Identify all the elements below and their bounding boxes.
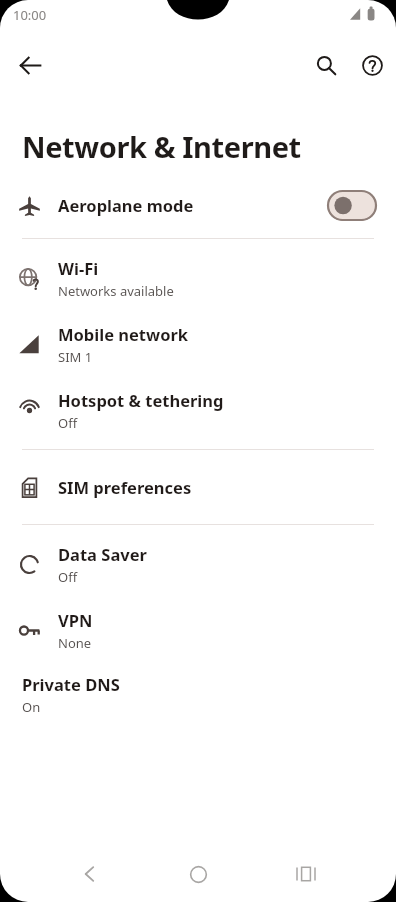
button[interactable]: VPN (0, 597, 396, 663)
button[interactable]: Wi-Fi (0, 245, 396, 311)
staticText: VPN (58, 609, 93, 631)
staticText: Mobile network (58, 323, 189, 345)
staticText: SIM preferences (58, 476, 192, 498)
staticText: None (58, 634, 92, 652)
button[interactable]: Aeroplane mode (0, 172, 396, 238)
button[interactable]: Help (348, 41, 396, 89)
staticText: 10:00 (13, 6, 47, 24)
staticText: Networks available (58, 282, 174, 300)
button[interactable]: Data Saver (0, 531, 396, 597)
staticText: SIM 1 (58, 348, 93, 366)
staticText: Data Saver (58, 543, 147, 565)
button[interactable]: SIM preferences (0, 456, 396, 518)
button[interactable]: Hotspot & tethering (0, 377, 396, 443)
button[interactable]: Mobile network (0, 311, 396, 377)
button[interactable]: Back (6, 41, 54, 89)
button[interactable]: Private DNS (0, 663, 396, 725)
button[interactable]: Recent apps (278, 846, 334, 902)
button[interactable]: Back (62, 846, 118, 902)
button[interactable]: Home (170, 846, 226, 902)
staticText: Private DNS (22, 673, 120, 695)
staticText: Network & Internet (22, 127, 301, 166)
button[interactable]: Search (302, 41, 350, 89)
staticText: Off (58, 414, 78, 432)
staticText: On (22, 698, 41, 716)
staticText: Aeroplane mode (58, 194, 326, 216)
button[interactable]: Aeroplane mode toggle (326, 189, 378, 221)
staticText: Hotspot & tethering (58, 389, 224, 411)
staticText: Wi-Fi (58, 257, 99, 279)
staticText: Off (58, 568, 78, 586)
